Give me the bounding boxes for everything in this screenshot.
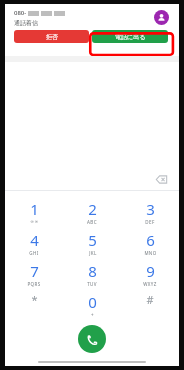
staticText: 2 <box>88 199 97 219</box>
staticText: DEF <box>145 219 155 225</box>
staticText: GHI <box>29 250 39 256</box>
button[interactable]: Call <box>78 325 106 353</box>
staticText: TUV <box>87 281 97 287</box>
staticText: ABC <box>87 219 97 225</box>
button[interactable]: 7 <box>5 261 63 292</box>
staticText: 8 <box>88 261 97 281</box>
staticText: 通話着信 <box>14 19 38 27</box>
staticText: JKL <box>89 250 97 256</box>
button[interactable]: 2 <box>63 199 121 230</box>
staticText: MNO <box>144 250 157 256</box>
staticText: 1 <box>30 199 39 219</box>
staticText: 4 <box>30 230 39 250</box>
staticText: 6 <box>146 230 155 250</box>
button[interactable]: 6 <box>121 230 179 261</box>
staticText: ∞∞ <box>30 219 39 224</box>
button[interactable]: Backspace <box>152 170 170 188</box>
button[interactable]: 9 <box>121 261 179 292</box>
staticText: 9 <box>146 261 155 281</box>
button[interactable]: 0 <box>63 292 121 323</box>
staticText: 拒否 <box>46 33 58 41</box>
staticText: 3 <box>146 199 155 219</box>
staticText: 7 <box>30 261 39 281</box>
staticText: + <box>91 312 94 318</box>
button[interactable]: 3 <box>121 199 179 230</box>
button[interactable]: 1 <box>5 199 63 230</box>
staticText: 5 <box>88 230 97 250</box>
button[interactable]: Contact avatar <box>154 10 169 25</box>
staticText: PQRS <box>27 281 41 287</box>
button[interactable]: * <box>5 292 63 323</box>
staticText: WXYZ <box>143 281 157 287</box>
staticText: 080- <box>14 9 27 17</box>
button[interactable]: 電話に出る <box>92 30 168 43</box>
button[interactable]: 5 <box>63 230 121 261</box>
button[interactable]: 4 <box>5 230 63 261</box>
button[interactable]: 拒否 <box>14 30 89 43</box>
staticText: 0 <box>88 292 97 312</box>
staticText: # <box>146 292 154 307</box>
button[interactable]: # <box>121 292 179 323</box>
staticText: 電話に出る <box>115 33 146 41</box>
button[interactable]: 8 <box>63 261 121 292</box>
staticText: * <box>31 292 38 307</box>
